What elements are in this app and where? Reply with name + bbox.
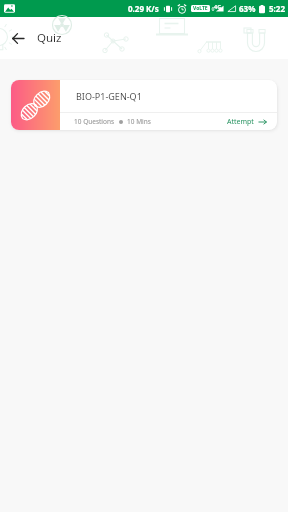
staticText: Quiz xyxy=(37,30,62,46)
staticText: 0.29 K/s xyxy=(128,3,159,14)
staticText: BIO-P1-GEN-Q1 xyxy=(76,90,142,102)
staticText: 63% xyxy=(239,3,256,14)
staticText: 5:22 xyxy=(269,3,285,14)
staticText: 4G xyxy=(214,3,222,10)
button[interactable]: Back xyxy=(5,25,31,51)
button[interactable]: BIO-P1-GEN-Q1 xyxy=(11,80,277,130)
staticText: Attempt xyxy=(227,117,254,127)
staticText: VoLTE xyxy=(193,5,208,12)
staticText: 10 Questions xyxy=(74,117,115,126)
button[interactable]: Attempt xyxy=(227,117,267,127)
staticText: 10 Mins xyxy=(127,117,151,126)
